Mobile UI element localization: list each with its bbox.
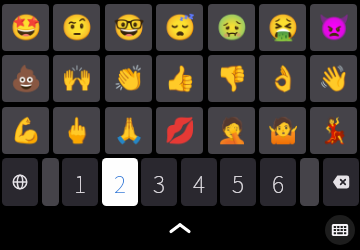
staticText: 6 [272, 166, 284, 199]
button[interactable]: 🤢 [208, 4, 255, 51]
button[interactable]: 👎 [208, 55, 255, 102]
button[interactable]: 🤓 [105, 4, 152, 51]
button[interactable]: 👍 [156, 55, 203, 102]
staticText: 💪 [10, 116, 42, 145]
button[interactable]: Back [160, 208, 200, 248]
button[interactable]: 🤷 [259, 107, 306, 154]
button[interactable]: 🙏 [105, 107, 152, 154]
staticText: 3 [153, 166, 165, 199]
button[interactable]: 🤦 [208, 107, 255, 154]
button[interactable]: Previous page [42, 158, 59, 206]
button[interactable]: 🤮 [259, 4, 306, 51]
staticText: 👌 [267, 64, 299, 93]
staticText: 🤢 [216, 13, 248, 42]
button[interactable]: 💋 [156, 107, 203, 154]
button[interactable]: 💩 [2, 55, 49, 102]
staticText: 👋 [318, 64, 350, 93]
button[interactable]: 👏 [105, 55, 152, 102]
staticText: 🤩 [10, 13, 42, 42]
button[interactable]: Backspace [323, 158, 359, 206]
staticText: 👍 [164, 64, 196, 93]
button[interactable]: 🤨 [53, 4, 100, 51]
staticText: 🙏 [113, 116, 145, 145]
button[interactable]: 💪 [2, 107, 49, 154]
button[interactable]: 👿 [310, 4, 357, 51]
staticText: 4 [193, 166, 205, 199]
staticText: 😴 [164, 13, 196, 42]
button[interactable]: Switch language [2, 158, 38, 206]
button[interactable]: 3 [141, 158, 177, 206]
staticText: 🙌 [61, 64, 93, 93]
staticText: 🖕 [61, 116, 93, 145]
staticText: 💋 [164, 116, 196, 145]
button[interactable]: 🖕 [53, 107, 100, 154]
button[interactable]: 🙌 [53, 55, 100, 102]
staticText: 1 [74, 166, 86, 199]
button[interactable]: Show keyboard [325, 215, 355, 245]
staticText: 5 [232, 166, 244, 199]
button[interactable]: Next page [300, 158, 319, 206]
staticText: 💩 [10, 64, 42, 93]
staticText: 🤮 [267, 13, 299, 42]
button[interactable]: 🤩 [2, 4, 49, 51]
staticText: 👿 [318, 13, 350, 42]
button[interactable]: 👋 [310, 55, 357, 102]
button[interactable]: 👌 [259, 55, 306, 102]
staticText: 🤨 [61, 13, 93, 42]
button[interactable]: 2 [102, 158, 138, 206]
button[interactable]: 6 [260, 158, 296, 206]
staticText: 2 [114, 166, 126, 199]
button[interactable]: 💃 [310, 107, 357, 154]
staticText: 👏 [113, 64, 145, 93]
button[interactable]: 😴 [156, 4, 203, 51]
staticText: 💃 [318, 116, 350, 145]
staticText: 🤓 [113, 13, 145, 42]
staticText: 👎 [216, 64, 248, 93]
button[interactable]: 1 [62, 158, 98, 206]
staticText: 🤷 [267, 116, 299, 145]
button[interactable]: 4 [181, 158, 217, 206]
staticText: 🤦 [216, 116, 248, 145]
button[interactable]: 5 [220, 158, 256, 206]
